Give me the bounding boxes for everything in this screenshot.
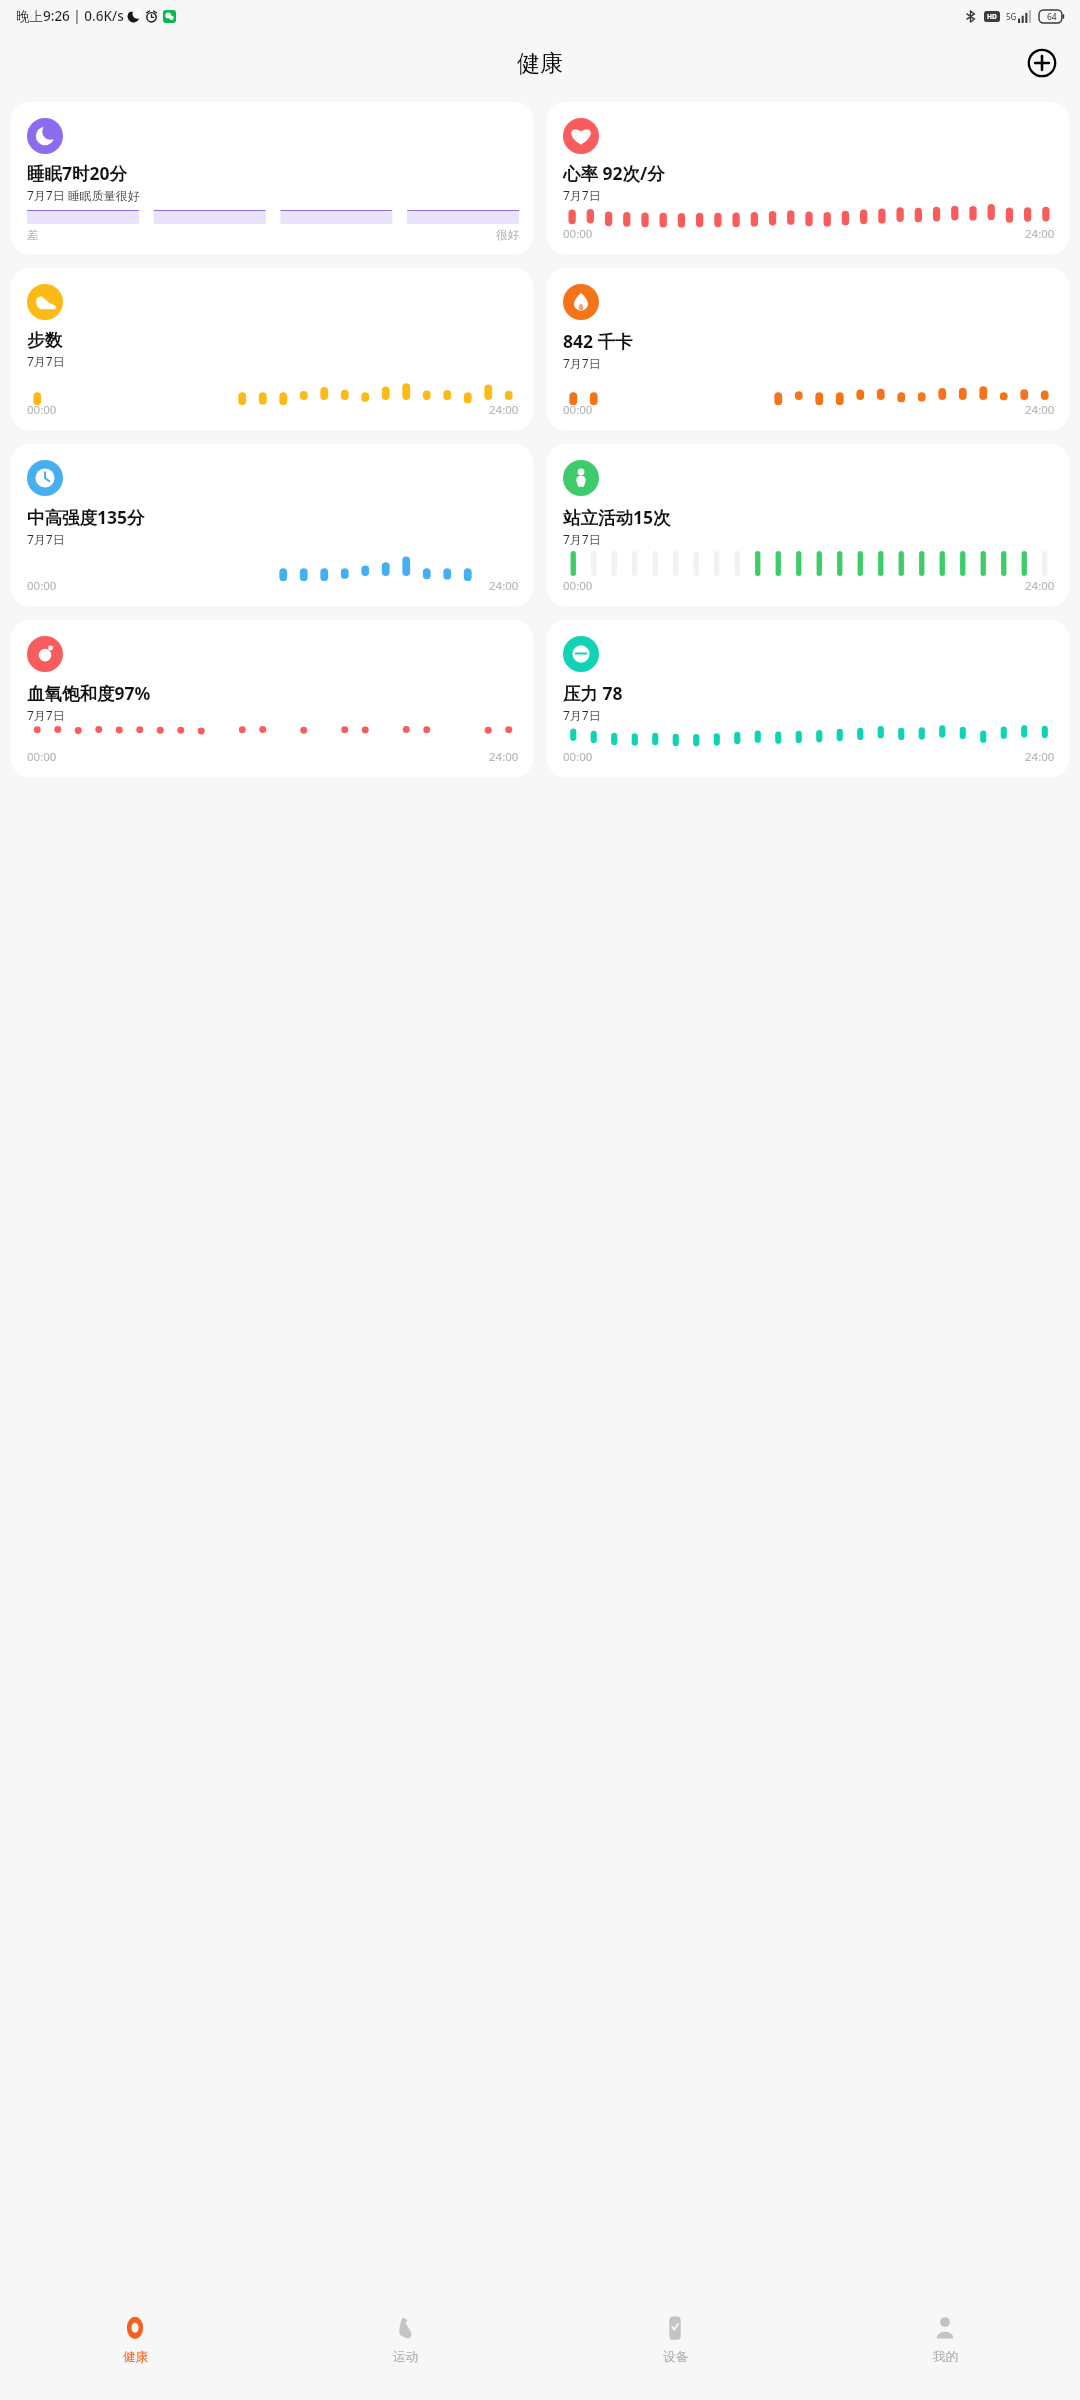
staticText: 00:00 <box>563 749 593 765</box>
staticText: 血氧饱和度97% <box>27 681 151 705</box>
staticText: 64 <box>1047 11 1057 23</box>
staticText: 24:00 <box>489 578 519 594</box>
staticText: 7月7日 <box>563 531 601 547</box>
staticText: 5G <box>1006 11 1017 22</box>
button[interactable]: 842 千卡 <box>547 268 1069 430</box>
staticText: 7月7日 <box>563 355 601 371</box>
staticText: 7月7日 <box>563 707 601 723</box>
button[interactable]: 运动 <box>270 2304 540 2400</box>
staticText: 24:00 <box>1025 402 1055 418</box>
staticText: 差 <box>27 228 39 242</box>
button[interactable]: 心率 92次/分 <box>547 102 1069 254</box>
staticText: 健康 <box>123 2349 148 2365</box>
button[interactable]: 血氧饱和度97% <box>11 620 533 777</box>
staticText: 7月7日 睡眠质量很好 <box>27 187 140 203</box>
staticText: 我的 <box>933 2349 958 2365</box>
staticText: 00:00 <box>563 402 593 418</box>
staticText: 晚上9:26 | 0.6K/s <box>16 7 124 25</box>
staticText: 00:00 <box>27 402 57 418</box>
staticText: 睡眠7时20分 <box>27 161 128 185</box>
staticText: 7月7日 <box>27 531 65 547</box>
button[interactable]: Add <box>1022 43 1062 83</box>
button[interactable]: 步数 <box>11 268 533 430</box>
staticText: 00:00 <box>563 578 593 594</box>
staticText: 842 千卡 <box>563 329 633 353</box>
button[interactable]: 中高强度135分 <box>11 444 533 606</box>
button[interactable]: 站立活动15次 <box>547 444 1069 606</box>
staticText: 心率 92次/分 <box>563 161 665 185</box>
staticText: 24:00 <box>489 749 519 765</box>
button[interactable]: 设备 <box>540 2304 810 2400</box>
staticText: 压力 78 <box>563 681 623 705</box>
staticText: 7月7日 <box>27 353 65 369</box>
staticText: 很好 <box>496 228 519 242</box>
staticText: 24:00 <box>489 402 519 418</box>
staticText: 中高强度135分 <box>27 505 145 529</box>
staticText: 00:00 <box>563 226 593 242</box>
button[interactable]: 健康 <box>0 2304 270 2400</box>
button[interactable]: 我的 <box>810 2304 1080 2400</box>
staticText: 运动 <box>393 2349 418 2365</box>
staticText: 24:00 <box>1025 226 1055 242</box>
staticText: 7月7日 <box>27 707 65 723</box>
staticText: 站立活动15次 <box>563 505 671 529</box>
staticText: 设备 <box>663 2349 688 2365</box>
staticText: HD <box>987 12 997 21</box>
staticText: 00:00 <box>27 749 57 765</box>
staticText: 00:00 <box>27 578 57 594</box>
staticText: 步数 <box>27 329 62 351</box>
button[interactable]: 压力 78 <box>547 620 1069 777</box>
button[interactable]: 睡眠7时20分 <box>11 102 533 254</box>
staticText: 7月7日 <box>563 187 601 203</box>
staticText: 24:00 <box>1025 749 1055 765</box>
staticText: 健康 <box>517 49 563 78</box>
staticText: 24:00 <box>1025 578 1055 594</box>
